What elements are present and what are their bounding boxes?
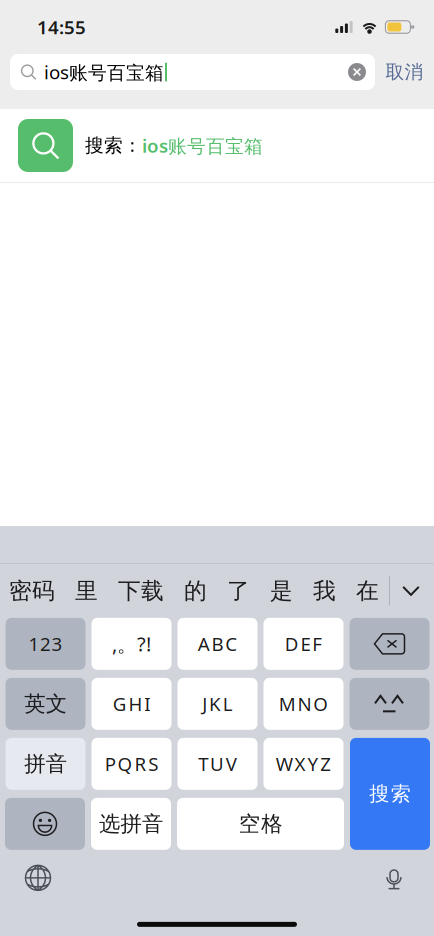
button[interactable]: 英文	[5, 678, 85, 730]
staticText: 搜索：	[85, 134, 142, 157]
button[interactable]: 里	[65, 564, 108, 618]
button[interactable]: DEF	[263, 618, 343, 670]
button[interactable]: 选拼音	[91, 798, 171, 850]
button[interactable]: Delete	[349, 618, 429, 670]
staticText: 了	[227, 577, 250, 605]
staticText: 取消	[385, 60, 423, 83]
button[interactable]: ,。?!	[91, 618, 171, 670]
staticText: WXYZ	[276, 751, 331, 776]
staticText: 下载	[118, 577, 164, 605]
button[interactable]: 搜索	[350, 738, 430, 850]
staticText: 密码	[9, 577, 55, 605]
button[interactable]: 空格	[177, 798, 344, 850]
staticText: GHI	[113, 691, 150, 716]
staticText: ABC	[198, 631, 237, 656]
button[interactable]: TUV	[177, 738, 257, 790]
button[interactable]: 搜索：	[0, 109, 434, 182]
button[interactable]: WXYZ	[263, 738, 343, 790]
button[interactable]: Switch keyboard	[12, 855, 64, 901]
button[interactable]: 我	[303, 564, 346, 618]
staticText: 123	[28, 631, 63, 656]
staticText: ios账号百宝箱	[142, 133, 263, 158]
button[interactable]: 密码	[0, 564, 65, 618]
button[interactable]: Emoji	[5, 798, 85, 850]
button[interactable]: 下载	[108, 564, 174, 618]
button[interactable]: PQRS	[91, 738, 171, 790]
staticText: 拼音	[24, 751, 67, 777]
button[interactable]: JKL	[177, 678, 257, 730]
staticText: 14:55	[37, 15, 86, 39]
button[interactable]: Dictation	[368, 855, 420, 901]
staticText: JKL	[202, 691, 233, 716]
staticText: 空格	[239, 811, 282, 837]
staticText: 里	[75, 577, 98, 605]
staticText: 搜索	[369, 782, 411, 806]
staticText: 选拼音	[99, 811, 163, 837]
staticText: 英文	[24, 691, 67, 717]
staticText: 我	[313, 577, 336, 605]
staticText: 的	[184, 577, 207, 605]
button[interactable]: 是	[260, 564, 303, 618]
button[interactable]: 123	[5, 618, 85, 670]
button[interactable]: 了	[217, 564, 260, 618]
button[interactable]: ABC	[177, 618, 257, 670]
button[interactable]: 的	[174, 564, 217, 618]
staticText: DEF	[285, 631, 322, 656]
button[interactable]: Kaomoji	[349, 678, 429, 730]
staticText: ios账号百宝箱	[44, 60, 164, 84]
staticText: ,。?!	[112, 630, 151, 657]
button[interactable]: GHI	[91, 678, 171, 730]
button[interactable]: Hide candidates	[390, 564, 432, 618]
button[interactable]: 拼音	[5, 738, 85, 790]
staticText: PQRS	[105, 751, 158, 776]
staticText: MNO	[279, 691, 328, 716]
staticText: TUV	[198, 751, 237, 776]
button[interactable]: 在	[346, 564, 389, 618]
button[interactable]: Clear text	[342, 57, 372, 87]
staticText: 在	[356, 577, 379, 605]
staticText: 是	[270, 577, 293, 605]
button[interactable]: 取消	[375, 54, 434, 90]
button[interactable]: MNO	[263, 678, 343, 730]
